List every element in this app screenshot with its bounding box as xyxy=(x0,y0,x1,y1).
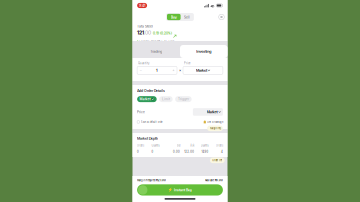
staticText: 0 xyxy=(137,150,139,153)
staticText: Margin Required ₹121.00 xyxy=(137,179,166,182)
staticText: 1490 xyxy=(202,150,209,153)
staticText: Market xyxy=(196,68,207,73)
staticText: × xyxy=(179,68,181,72)
button[interactable]: Increase quantity xyxy=(169,66,177,74)
staticText: Quantity xyxy=(151,144,159,147)
staticText: 0 xyxy=(151,150,153,153)
button[interactable]: Buy xyxy=(167,14,181,20)
button[interactable]: Save as default order xyxy=(137,120,163,124)
staticText: Save as default order xyxy=(141,120,163,124)
button[interactable]: Trigger xyxy=(175,96,192,102)
button[interactable]: Limit xyxy=(159,96,173,102)
staticText: 4 xyxy=(221,150,223,153)
button[interactable]: Market xyxy=(193,108,223,116)
staticText: Market Depth xyxy=(137,136,158,141)
staticText: margin req xyxy=(209,127,220,130)
staticText: Price xyxy=(184,62,191,65)
button[interactable]: Sell xyxy=(181,14,193,20)
staticText: Buy xyxy=(171,15,177,19)
staticText: Order ref xyxy=(212,159,222,162)
staticText: + xyxy=(172,68,174,73)
staticText: Price xyxy=(137,110,145,114)
staticText: 0.19 (0.20%) xyxy=(151,31,172,35)
staticText: CLOSED: NSE MKT ACTIVE xyxy=(139,40,174,43)
staticText: Tata Steel xyxy=(137,24,153,28)
button[interactable]: Close xyxy=(217,13,225,21)
staticText: Ask xyxy=(190,144,194,147)
staticText: Available ₹0.00 xyxy=(205,179,223,182)
staticText: 122.00 xyxy=(184,150,194,153)
button[interactable]: ⚡ Instant Buy xyxy=(137,184,223,195)
staticText: ⚡ Instant Buy xyxy=(168,188,192,192)
staticText: Get Brokerage xyxy=(207,120,223,124)
button[interactable]: Market xyxy=(137,96,157,102)
staticText: – xyxy=(140,68,142,73)
staticText: Market xyxy=(207,110,218,114)
staticText: Trading xyxy=(150,49,162,54)
staticText: 1 xyxy=(156,68,158,73)
staticText: Limit xyxy=(162,97,170,101)
staticText: Trigger xyxy=(178,97,189,101)
staticText: Quantity xyxy=(201,144,209,147)
staticText: Market xyxy=(139,97,150,101)
staticText: Sell xyxy=(184,15,190,19)
staticText: Quantity xyxy=(138,62,149,65)
button[interactable]: Investing xyxy=(180,45,227,58)
staticText: Orders xyxy=(137,144,144,147)
button[interactable]: Trading xyxy=(132,45,180,58)
staticText: 0.00 xyxy=(173,150,180,153)
staticText: Bid xyxy=(177,144,180,147)
staticText: Investing xyxy=(196,49,211,54)
button[interactable]: Market xyxy=(183,65,223,74)
staticText: 121 xyxy=(137,29,144,36)
staticText: Add Order Details xyxy=(137,88,165,93)
staticText: Orders xyxy=(216,144,223,147)
staticText: .00 xyxy=(144,29,151,36)
staticText: 9:41 xyxy=(139,3,145,8)
button[interactable]: Decrease quantity xyxy=(137,66,145,74)
